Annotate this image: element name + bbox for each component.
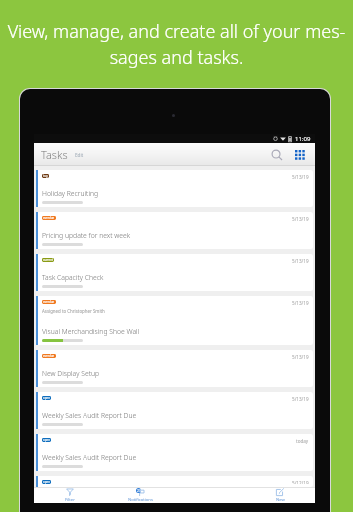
button[interactable]: Apps: [290, 145, 310, 165]
staticText: 5/13/19: [292, 354, 309, 360]
staticText: open: [43, 396, 50, 400]
staticText: Weekly Sales Audit Report Due: [42, 411, 137, 420]
button[interactable]: overdue: [36, 296, 313, 345]
staticText: overdue: [43, 300, 55, 304]
button[interactable]: 23: [105, 488, 175, 503]
staticText: Notifications: [128, 497, 153, 503]
staticText: 5/13/19: [292, 396, 309, 402]
button[interactable]: Edit: [73, 150, 86, 160]
staticText: New Display Setup: [42, 369, 100, 378]
staticText: 5/13/19: [292, 300, 309, 306]
staticText: Task Capacity Check: [42, 273, 104, 282]
staticText: Visual Merchandising Shoe Wall: [42, 327, 140, 336]
staticText: Assigned to Christopher Smith: [42, 308, 105, 314]
staticText: overdue: [43, 216, 55, 220]
staticText: 5/13/19: [292, 174, 309, 180]
button[interactable]: open: [36, 392, 313, 429]
staticText: Filter: [65, 497, 75, 503]
button[interactable]: Search: [267, 145, 287, 165]
button[interactable]: Filter: [34, 488, 105, 503]
button[interactable]: current: [36, 254, 313, 291]
staticText: today: [296, 438, 309, 444]
staticText: Edit: [75, 152, 84, 158]
staticText: open: [43, 480, 50, 484]
staticText: 23: [137, 488, 141, 493]
staticText: View, manage, and create all of your mes…: [2, 19, 351, 69]
button[interactable]: New: [245, 488, 315, 503]
staticText: New: [276, 497, 285, 503]
staticText: 5/13/19: [292, 258, 309, 264]
staticText: 5/13/19: [292, 216, 309, 222]
staticText: current: [43, 258, 53, 262]
staticText: Holiday Recruiting: [42, 189, 99, 198]
staticText: Tasks: [41, 147, 68, 162]
staticText: tag: [43, 174, 48, 178]
button[interactable]: tag: [36, 170, 313, 207]
button[interactable]: overdue: [36, 212, 313, 249]
button[interactable]: overdue: [36, 350, 313, 387]
staticText: 11:09: [295, 135, 311, 143]
button[interactable]: open: [36, 434, 313, 471]
staticText: 5/12/19: [292, 480, 309, 484]
staticText: overdue: [43, 354, 55, 358]
button[interactable]: open: [36, 476, 313, 487]
staticText: Pricing update for next week: [42, 231, 131, 240]
staticText: Weekly Sales Audit Report Due: [42, 453, 137, 462]
staticText: open: [43, 438, 50, 442]
